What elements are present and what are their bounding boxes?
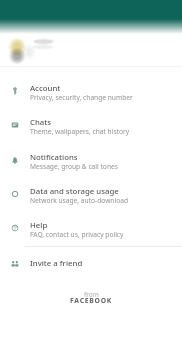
- staticText: FAQ, contact us, privacy policy: [30, 230, 124, 239]
- button[interactable]: Notifications: [0, 145, 182, 179]
- staticText: Invite a friend: [30, 258, 83, 269]
- staticText: Chats: [30, 117, 52, 128]
- staticText: FACEBOOK: [70, 296, 113, 305]
- staticText: Network usage, auto-download: [30, 196, 129, 205]
- button[interactable]: Chats: [0, 110, 182, 144]
- button[interactable]: Account: [0, 76, 182, 110]
- staticText: from: [84, 290, 99, 299]
- button[interactable]: Help: [0, 213, 182, 247]
- staticText: Theme, wallpapers, chat history: [30, 127, 130, 136]
- staticText: Account: [30, 83, 61, 94]
- staticText: Help: [30, 220, 48, 231]
- staticText: Privacy, security, change number: [30, 93, 133, 102]
- staticText: Notifications: [30, 152, 78, 163]
- staticText: Message, group & call tones: [30, 162, 118, 171]
- button[interactable]: Data and storage usage: [0, 179, 182, 213]
- button[interactable]: [0, 33, 182, 65]
- staticText: Data and storage usage: [30, 186, 119, 197]
- button[interactable]: Invite a friend: [0, 252, 182, 274]
